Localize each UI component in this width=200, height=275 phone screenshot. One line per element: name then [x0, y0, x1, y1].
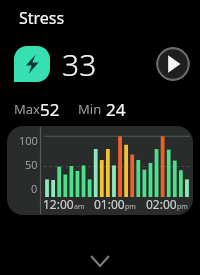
- staticText: 50: [25, 157, 38, 172]
- staticText: 12:00: [43, 196, 74, 212]
- staticText: Max: [14, 100, 40, 118]
- staticText: 24: [106, 98, 126, 120]
- staticText: 100: [19, 133, 38, 148]
- staticText: pm: [177, 202, 188, 212]
- button[interactable]: Start measurement: [156, 47, 190, 81]
- staticText: Min: [78, 100, 102, 118]
- button[interactable]: 100: [7, 126, 193, 215]
- button[interactable]: Scroll down: [0, 247, 200, 275]
- staticText: 52: [40, 98, 60, 120]
- staticText: 0: [31, 181, 38, 196]
- staticText: 33: [62, 44, 97, 85]
- staticText: Stress: [19, 7, 65, 29]
- staticText: 01:00: [94, 196, 125, 212]
- staticText: am: [74, 202, 85, 212]
- staticText: 02:00: [146, 196, 177, 212]
- staticText: pm: [125, 202, 136, 212]
